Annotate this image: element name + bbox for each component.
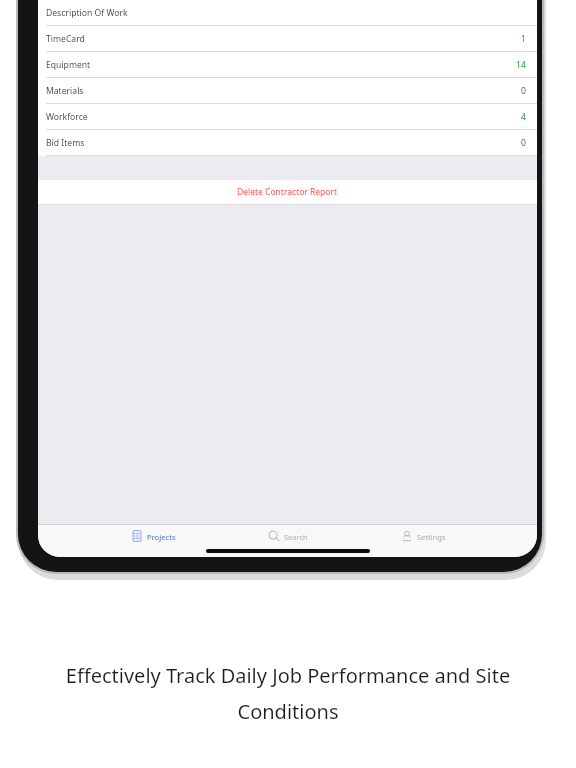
button[interactable]: Settings bbox=[400, 529, 446, 557]
button[interactable]: Description Of Work bbox=[38, 0, 537, 26]
staticText: Projects bbox=[147, 532, 176, 542]
other: Projects bbox=[131, 530, 143, 542]
staticText: Description Of Work bbox=[46, 7, 128, 19]
button[interactable]: Projects bbox=[130, 529, 176, 557]
other: Settings bbox=[401, 530, 413, 542]
staticText: Workforce bbox=[46, 111, 88, 123]
button[interactable]: Equipment bbox=[38, 52, 537, 78]
staticText: Effectively Track Daily Job Performance … bbox=[26, 662, 550, 725]
staticText: 0 bbox=[521, 137, 526, 149]
button[interactable]: Workforce bbox=[38, 104, 537, 130]
staticText: 4 bbox=[521, 111, 526, 123]
staticText: TimeCard bbox=[46, 33, 85, 45]
button[interactable]: Materials bbox=[38, 78, 537, 104]
staticText: Bid Items bbox=[46, 137, 85, 149]
button[interactable]: Search bbox=[267, 529, 308, 557]
button[interactable]: Delete Contractor Report bbox=[38, 180, 537, 204]
staticText: Search bbox=[284, 532, 308, 542]
staticText: Equipment bbox=[46, 59, 91, 71]
staticText: 0 bbox=[521, 85, 526, 97]
button[interactable]: Bid Items bbox=[38, 130, 537, 156]
other: Search bbox=[268, 530, 280, 542]
staticText: Settings bbox=[417, 532, 446, 542]
staticText: Materials bbox=[46, 85, 84, 97]
staticText: Delete Contractor Report bbox=[237, 186, 338, 198]
staticText: 1 bbox=[521, 33, 526, 45]
staticText: 14 bbox=[516, 59, 526, 71]
button[interactable]: TimeCard bbox=[38, 26, 537, 52]
